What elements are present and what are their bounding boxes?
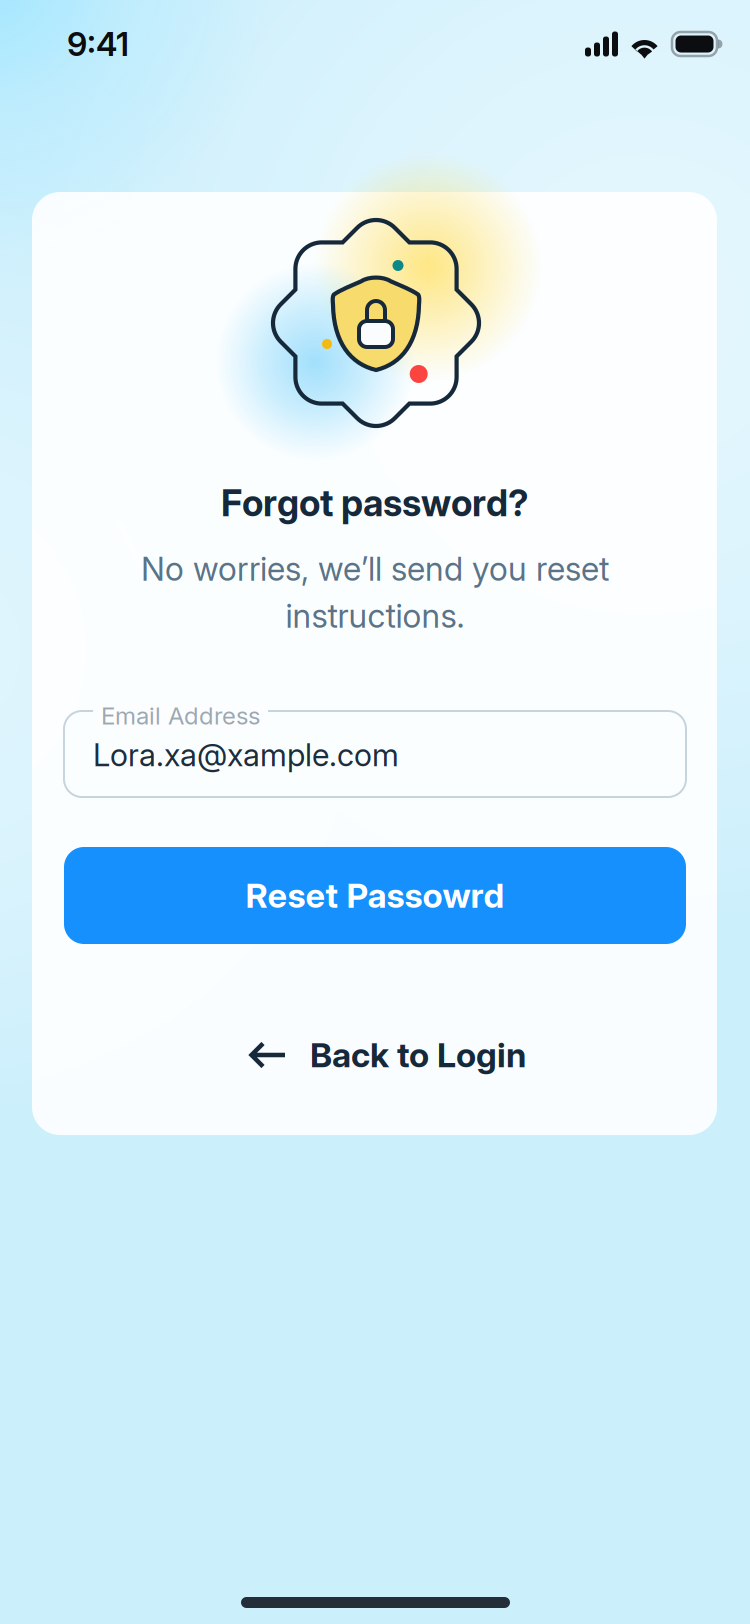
- staticText: Email Address: [101, 701, 260, 730]
- staticText: Reset Passowrd: [245, 875, 504, 916]
- staticText: Forgot password?: [221, 481, 529, 525]
- staticText: Lora.xa@xample.com: [93, 736, 399, 774]
- staticText: Back to Login: [310, 1034, 526, 1075]
- staticText: No worries, we’ll send you reset: [141, 549, 609, 589]
- button[interactable]: Reset Passowrd: [64, 847, 686, 944]
- staticText: 9:41: [67, 24, 129, 64]
- staticText: instructions.: [285, 596, 464, 636]
- button[interactable]: Back to Login: [249, 1024, 549, 1086]
